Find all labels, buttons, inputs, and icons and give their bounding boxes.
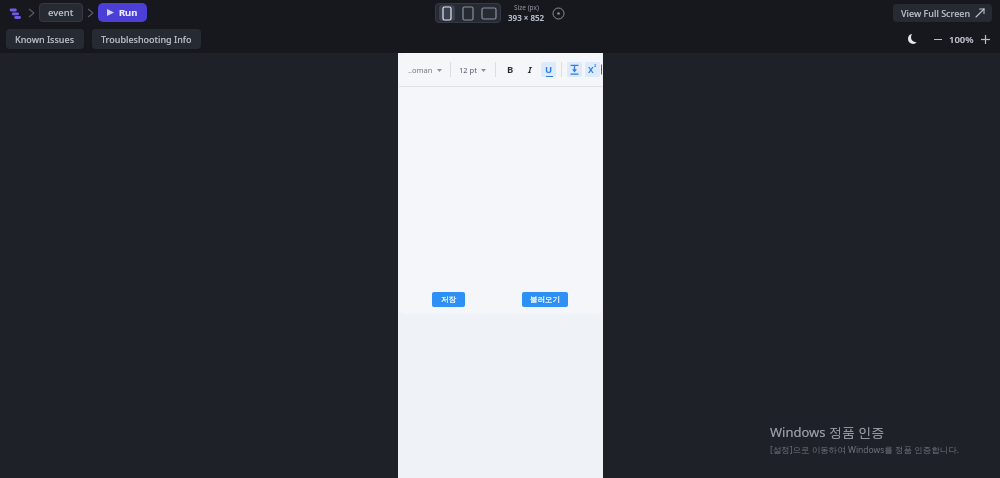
staticText: B <box>507 63 514 76</box>
staticText: 저장 <box>441 295 456 304</box>
staticText: ² <box>594 64 597 72</box>
staticText: X <box>588 64 594 76</box>
button[interactable]: 불러오기 <box>522 292 568 307</box>
button[interactable]: Zoom in <box>978 32 992 46</box>
button[interactable]: 저장 <box>432 292 465 307</box>
staticText: View Full Screen <box>901 7 971 19</box>
button[interactable]: Superscript <box>585 62 600 77</box>
button[interactable]: Tablet preview <box>460 5 476 21</box>
button[interactable]: Toggle dark mode <box>905 31 921 47</box>
button[interactable]: Bold <box>503 62 518 77</box>
staticText: U <box>545 63 553 76</box>
staticText: I <box>528 63 532 76</box>
button[interactable]: Known Issues <box>6 29 84 49</box>
button[interactable]: Phone preview <box>439 5 455 21</box>
staticText: ..oman <box>408 65 433 75</box>
staticText: 393 × 852 <box>508 12 545 23</box>
button[interactable]: Size info <box>552 7 565 20</box>
staticText: Troubleshooting Info <box>101 33 192 45</box>
staticText: 불러오기 <box>530 295 560 304</box>
staticText: 100% <box>949 33 974 46</box>
button[interactable]: Text color <box>567 62 582 77</box>
staticText: event <box>48 6 74 19</box>
button[interactable]: View Full Screen <box>893 4 992 22</box>
button[interactable]: Underline <box>541 62 556 77</box>
button[interactable]: Desktop preview <box>481 5 497 21</box>
button[interactable]: Troubleshooting Info <box>92 29 201 49</box>
button[interactable]: Run <box>98 3 147 22</box>
staticText: [설정]으로 이동하여 Windows를 정품 인증합니다. <box>770 444 960 456</box>
staticText: Run <box>119 6 138 19</box>
staticText: 12 pt <box>459 65 477 75</box>
button[interactable]: 12 pt <box>459 62 486 78</box>
staticText: Known Issues <box>15 33 75 45</box>
staticText: Size (px) <box>514 3 539 12</box>
button[interactable]: Italic <box>522 62 537 77</box>
button[interactable]: Zoom out <box>931 32 945 46</box>
button[interactable]: ..oman <box>408 62 442 78</box>
staticText: Windows 정품 인증 <box>770 423 885 441</box>
button[interactable]: Home <box>6 4 24 22</box>
button[interactable]: event <box>39 3 83 22</box>
